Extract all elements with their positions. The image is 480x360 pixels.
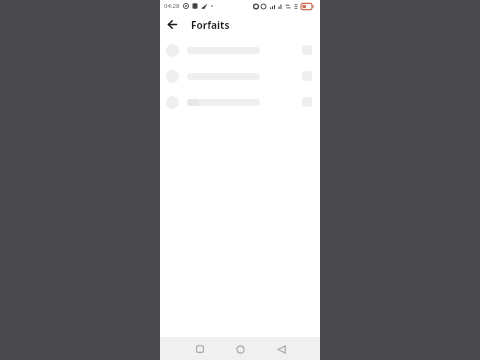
button[interactable] xyxy=(160,89,320,115)
button[interactable] xyxy=(160,37,320,63)
button[interactable] xyxy=(160,63,320,89)
button[interactable] xyxy=(275,343,287,355)
staticText: Forfaits xyxy=(191,18,230,32)
button[interactable] xyxy=(234,343,246,355)
button[interactable] xyxy=(194,343,206,355)
staticText: 04:28 xyxy=(164,2,180,10)
button[interactable] xyxy=(160,12,184,37)
